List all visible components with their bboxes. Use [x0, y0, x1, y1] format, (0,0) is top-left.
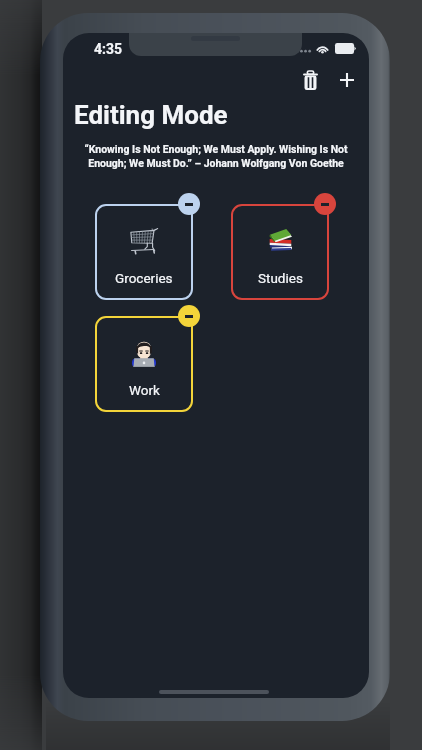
staticText: Editing Mode — [74, 100, 228, 130]
button[interactable]: Studies — [231, 204, 329, 300]
staticText: Groceries — [115, 270, 173, 286]
button[interactable]: Add — [329, 62, 365, 98]
button[interactable]: Groceries — [95, 204, 193, 300]
button[interactable]: Remove Work — [178, 305, 200, 327]
staticText: Work — [129, 382, 160, 398]
button[interactable]: Delete — [292, 62, 328, 98]
button[interactable]: Work — [95, 316, 193, 412]
staticText: “Knowing Is Not Enough; We Must Apply. W… — [79, 143, 353, 170]
staticText: 4:35 — [94, 41, 123, 57]
button[interactable]: Remove Groceries — [178, 193, 200, 215]
staticText: Studies — [258, 270, 303, 286]
button[interactable]: Remove Studies — [314, 193, 336, 215]
